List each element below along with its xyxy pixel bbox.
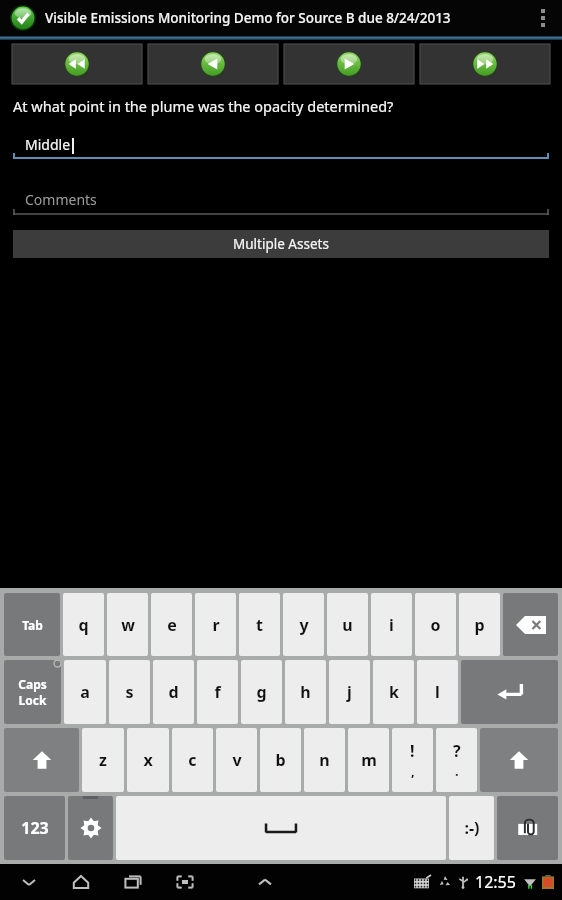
staticText: 123 xyxy=(21,817,49,839)
button[interactable]: p xyxy=(459,593,500,656)
button[interactable]: Screenshot xyxy=(170,867,200,897)
staticText: d xyxy=(168,681,179,703)
button[interactable]: Rewind to start xyxy=(12,44,142,84)
button[interactable]: u xyxy=(327,593,368,656)
button[interactable]: n xyxy=(304,728,345,792)
staticText: 12:55 xyxy=(475,871,516,893)
staticText: Caps Lock xyxy=(18,676,47,708)
button[interactable]: Multiple Assets xyxy=(13,230,549,258)
staticText: t xyxy=(256,614,263,636)
button[interactable]: Home xyxy=(66,867,96,897)
staticText: z xyxy=(99,749,107,771)
button[interactable]: Comments xyxy=(13,187,549,215)
button[interactable]: o xyxy=(415,593,456,656)
button[interactable]: s xyxy=(109,660,150,724)
button[interactable]: z xyxy=(82,728,124,792)
staticText: Visible Emissions Monitoring Demo for So… xyxy=(45,9,451,27)
staticText: w xyxy=(121,614,135,636)
button[interactable]: space xyxy=(116,796,446,860)
button[interactable]: g xyxy=(241,660,282,724)
button[interactable]: Middle xyxy=(13,129,549,159)
staticText: n xyxy=(319,749,330,771)
button[interactable]: backspace xyxy=(503,593,558,656)
button[interactable]: v xyxy=(216,728,257,792)
staticText: v xyxy=(232,749,242,771)
button[interactable]: More options xyxy=(530,0,556,36)
staticText: , xyxy=(411,762,415,780)
button[interactable]: shift xyxy=(480,728,558,792)
staticText: u xyxy=(342,614,353,636)
button[interactable]: t xyxy=(239,593,280,656)
button[interactable]: x xyxy=(127,728,169,792)
button[interactable]: Tab xyxy=(4,593,60,656)
staticText: j xyxy=(347,681,352,703)
button[interactable]: y xyxy=(283,593,324,656)
button[interactable]: Next xyxy=(284,44,414,84)
staticText: y xyxy=(299,614,309,636)
button[interactable]: c xyxy=(172,728,213,792)
button[interactable]: f xyxy=(197,660,238,724)
button[interactable]: Recents xyxy=(118,867,148,897)
button[interactable]: settings xyxy=(68,796,113,860)
button[interactable]: 123 xyxy=(4,796,65,860)
staticText: e xyxy=(167,614,177,636)
staticText: Multiple Assets xyxy=(233,235,329,253)
button[interactable]: e xyxy=(151,593,192,656)
button[interactable]: a xyxy=(64,660,106,724)
button[interactable]: h xyxy=(285,660,326,724)
staticText: f xyxy=(214,681,221,703)
staticText: p xyxy=(474,614,485,636)
staticText: Comments xyxy=(25,190,97,209)
button[interactable]: Previous xyxy=(148,44,278,84)
staticText: i xyxy=(389,614,394,636)
staticText: c xyxy=(188,749,197,771)
staticText: r xyxy=(212,614,220,636)
staticText: s xyxy=(125,681,134,703)
button[interactable]: ? xyxy=(436,728,477,792)
staticText: b xyxy=(275,749,286,771)
staticText: ? xyxy=(453,740,461,762)
button[interactable]: j xyxy=(329,660,370,724)
staticText: . xyxy=(455,762,459,780)
button[interactable]: enter xyxy=(461,660,558,724)
staticText: x xyxy=(143,749,153,771)
button[interactable]: b xyxy=(260,728,301,792)
button[interactable]: Skip to end xyxy=(420,44,550,84)
staticText: h xyxy=(300,681,311,703)
button[interactable]: Caps Lock xyxy=(4,660,61,724)
button[interactable]: w xyxy=(107,593,148,656)
staticText: ! xyxy=(410,740,415,762)
button[interactable]: Back xyxy=(14,867,44,897)
button[interactable]: d xyxy=(153,660,194,724)
button[interactable]: ! xyxy=(392,728,433,792)
button[interactable]: m xyxy=(348,728,389,792)
button[interactable]: l xyxy=(417,660,458,724)
staticText: At what point in the plume was the opaci… xyxy=(13,96,394,116)
button[interactable]: k xyxy=(373,660,414,724)
staticText: k xyxy=(389,681,399,703)
button[interactable]: :-) xyxy=(449,796,494,860)
staticText: g xyxy=(256,681,267,703)
button[interactable]: r xyxy=(195,593,236,656)
staticText: a xyxy=(80,681,90,703)
staticText: Middle xyxy=(25,135,71,154)
staticText: l xyxy=(435,681,440,703)
button[interactable]: q xyxy=(63,593,104,656)
staticText: o xyxy=(430,614,441,636)
button[interactable]: Expand xyxy=(250,867,280,897)
staticText: Tab xyxy=(22,617,43,633)
button[interactable]: attach xyxy=(497,796,558,860)
button[interactable]: shift xyxy=(4,728,79,792)
staticText: m xyxy=(361,749,377,771)
staticText: q xyxy=(78,614,89,636)
button[interactable]: i xyxy=(371,593,412,656)
staticText: :-) xyxy=(464,817,480,839)
